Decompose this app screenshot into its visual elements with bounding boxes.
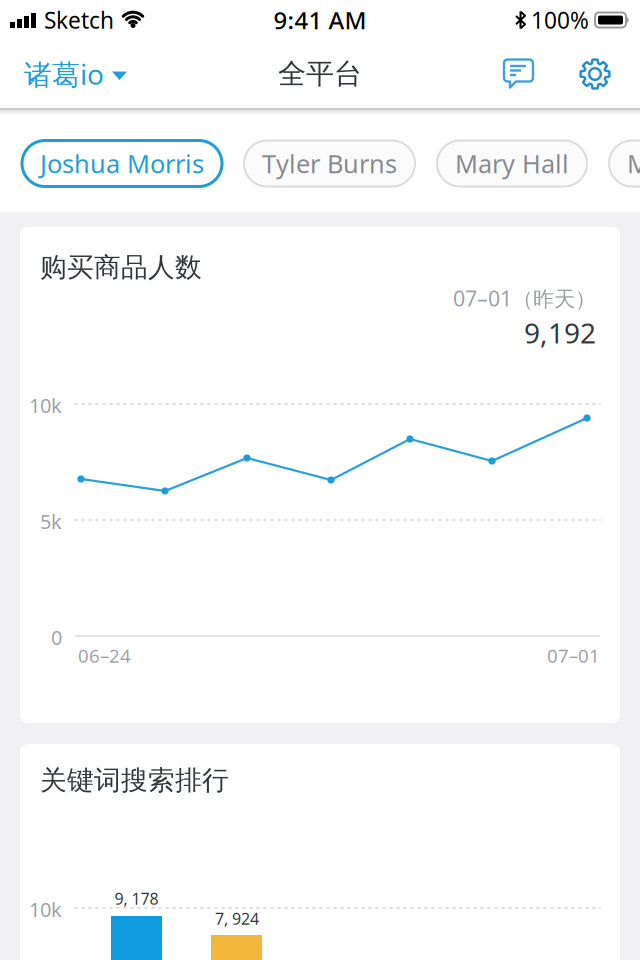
staticText: Joshua Morris bbox=[40, 147, 204, 180]
staticText: Mary Hall bbox=[455, 147, 569, 180]
button[interactable]: Mary Hall bbox=[437, 140, 587, 186]
staticText: Michael King bbox=[627, 147, 640, 180]
button[interactable]: Joshua Morris bbox=[22, 140, 222, 186]
staticText: 0 bbox=[51, 624, 62, 651]
staticText: 10k bbox=[29, 392, 62, 419]
staticText: 9:41 AM bbox=[273, 4, 366, 36]
staticText: 关键词搜索排行 bbox=[40, 764, 229, 797]
staticText: 07–01（昨天） bbox=[453, 284, 596, 312]
staticText: 5k bbox=[40, 508, 62, 535]
button[interactable]: Tyler Burns bbox=[244, 140, 415, 186]
button[interactable]: Messages bbox=[504, 59, 534, 88]
button[interactable]: Michael King bbox=[609, 140, 640, 186]
staticText: Sketch bbox=[44, 5, 114, 35]
staticText: 7, 924 bbox=[215, 908, 259, 929]
staticText: 购买商品人数 bbox=[40, 251, 202, 284]
staticText: 9,192 bbox=[524, 314, 596, 351]
button[interactable]: Settings bbox=[580, 59, 610, 89]
button[interactable]: 诸葛io bbox=[24, 55, 127, 93]
staticText: 07–01 bbox=[547, 643, 600, 668]
staticText: 9, 178 bbox=[114, 888, 158, 909]
staticText: 全平台 bbox=[278, 57, 362, 91]
staticText: 10k bbox=[29, 896, 62, 923]
staticText: 06–24 bbox=[78, 643, 131, 668]
staticText: Tyler Burns bbox=[262, 147, 397, 180]
staticText: 100% bbox=[531, 5, 589, 35]
staticText: 诸葛io bbox=[24, 55, 104, 93]
